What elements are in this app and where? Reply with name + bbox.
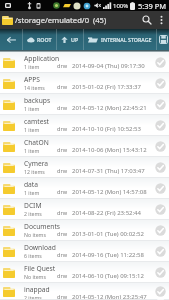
button[interactable]: Search xyxy=(139,11,155,29)
staticText: drw xyxy=(57,167,68,175)
button[interactable]: Documents xyxy=(0,220,169,241)
staticText: camtest xyxy=(24,117,50,126)
staticText: 2014-09-16 (Tue) 11:22:58 xyxy=(72,251,144,259)
staticText: drw xyxy=(57,83,68,91)
button[interactable]: Select ChatON xyxy=(155,141,166,152)
button[interactable]: Select Download xyxy=(155,246,166,257)
button[interactable]: Select Application xyxy=(155,57,166,68)
staticText: drw xyxy=(57,188,68,196)
button[interactable]: Select backups xyxy=(155,99,166,110)
staticText: 100% xyxy=(113,2,129,10)
staticText: drw xyxy=(57,209,68,217)
staticText: data xyxy=(24,180,39,189)
staticText: backups xyxy=(24,96,51,105)
staticText: 1 item xyxy=(24,147,40,154)
button[interactable]: SD card xyxy=(157,29,169,50)
staticText: Application xyxy=(24,54,60,63)
staticText: Cymera xyxy=(24,159,49,168)
staticText: 6 items xyxy=(24,252,42,259)
staticText: ChatON xyxy=(24,138,49,147)
staticText: No items xyxy=(24,231,46,238)
staticText: 2014-09-04 (Thu) 09:17:30 xyxy=(72,62,145,70)
button[interactable]: Application xyxy=(0,52,169,73)
button[interactable]: More options xyxy=(155,11,167,29)
staticText: drw xyxy=(57,146,68,154)
staticText: ROOT xyxy=(37,36,52,43)
button[interactable]: INTERNAL STORAGE xyxy=(84,29,156,50)
button[interactable]: camtest xyxy=(0,115,169,136)
staticText: 2014-07-31 (Thu) 17:03:47 xyxy=(72,167,145,175)
button[interactable]: APPS xyxy=(0,73,169,94)
staticText: drw xyxy=(57,230,68,238)
staticText: Download xyxy=(24,243,56,252)
staticText: 2 items xyxy=(24,294,42,300)
button[interactable]: Download xyxy=(0,241,169,262)
button[interactable]: File Quest xyxy=(0,262,169,283)
staticText: 2013-01-01 (Tue) 00:02:52 xyxy=(72,230,144,238)
staticText: drw xyxy=(57,125,68,133)
button[interactable]: Select Cymera xyxy=(155,162,166,173)
button[interactable]: inappad xyxy=(0,283,169,300)
staticText: 2014-05-12 (Mon) 22:45:21 xyxy=(72,104,147,112)
staticText: 2014-08-22 (Fri) 23:52:44 xyxy=(72,209,141,217)
staticText: 5:39 PM xyxy=(138,1,167,11)
staticText: DCIM xyxy=(24,201,42,210)
staticText: 2014-05-12 (Mon) 23:25:47 xyxy=(72,293,147,300)
staticText: 2014-06-10 (Tue) 09:15:12 xyxy=(72,272,144,280)
staticText: 1 item xyxy=(24,189,40,196)
button[interactable]: Select Documents xyxy=(155,225,166,236)
button[interactable]: data xyxy=(0,178,169,199)
staticText: UP xyxy=(71,36,79,43)
button[interactable]: ROOT xyxy=(23,29,56,50)
button[interactable]: Select camtest xyxy=(155,120,166,131)
staticText: 14 items xyxy=(24,84,45,91)
staticText: 2 items xyxy=(24,210,42,217)
staticText: drw xyxy=(57,293,68,300)
button[interactable]: backups xyxy=(0,94,169,115)
staticText: drw xyxy=(57,104,68,112)
button[interactable]: Current folder xyxy=(2,16,13,25)
staticText: Documents xyxy=(24,222,61,231)
staticText: 1 item xyxy=(24,126,40,133)
button[interactable]: Back xyxy=(0,29,22,50)
staticText: 1 item xyxy=(24,63,40,70)
staticText: 2015-01-02 (Fri) 17:33:37 xyxy=(72,83,141,91)
button[interactable]: Select DCIM xyxy=(155,204,166,215)
staticText: 2014-05-12 (Mon) 14:57:08 xyxy=(72,188,147,196)
staticText: 12 items xyxy=(24,168,45,175)
button[interactable]: Select APPS xyxy=(155,78,166,89)
staticText: drw xyxy=(57,272,68,280)
staticText: drw xyxy=(57,251,68,259)
button[interactable]: DCIM xyxy=(0,199,169,220)
staticText: No items xyxy=(24,273,46,280)
staticText: inappad xyxy=(24,285,50,294)
button[interactable]: Select File Quest xyxy=(155,267,166,278)
staticText: 2014-10-06 (Mon) 15:43:12 xyxy=(72,146,147,154)
staticText: 2014-10-10 (Fri) 10:52:53 xyxy=(72,125,141,133)
button[interactable]: Select inappad xyxy=(155,286,166,297)
button[interactable]: UP xyxy=(57,29,83,50)
staticText: INTERNAL STORAGE xyxy=(101,36,152,43)
staticText: APPS xyxy=(24,75,41,84)
staticText: File Quest xyxy=(24,264,56,273)
staticText: /storage/emulated/0 (45) xyxy=(15,15,107,25)
button[interactable]: Select data xyxy=(155,183,166,194)
staticText: 1 item xyxy=(24,105,40,112)
button[interactable]: Cymera xyxy=(0,157,169,178)
button[interactable]: ChatON xyxy=(0,136,169,157)
staticText: drw xyxy=(57,62,68,70)
